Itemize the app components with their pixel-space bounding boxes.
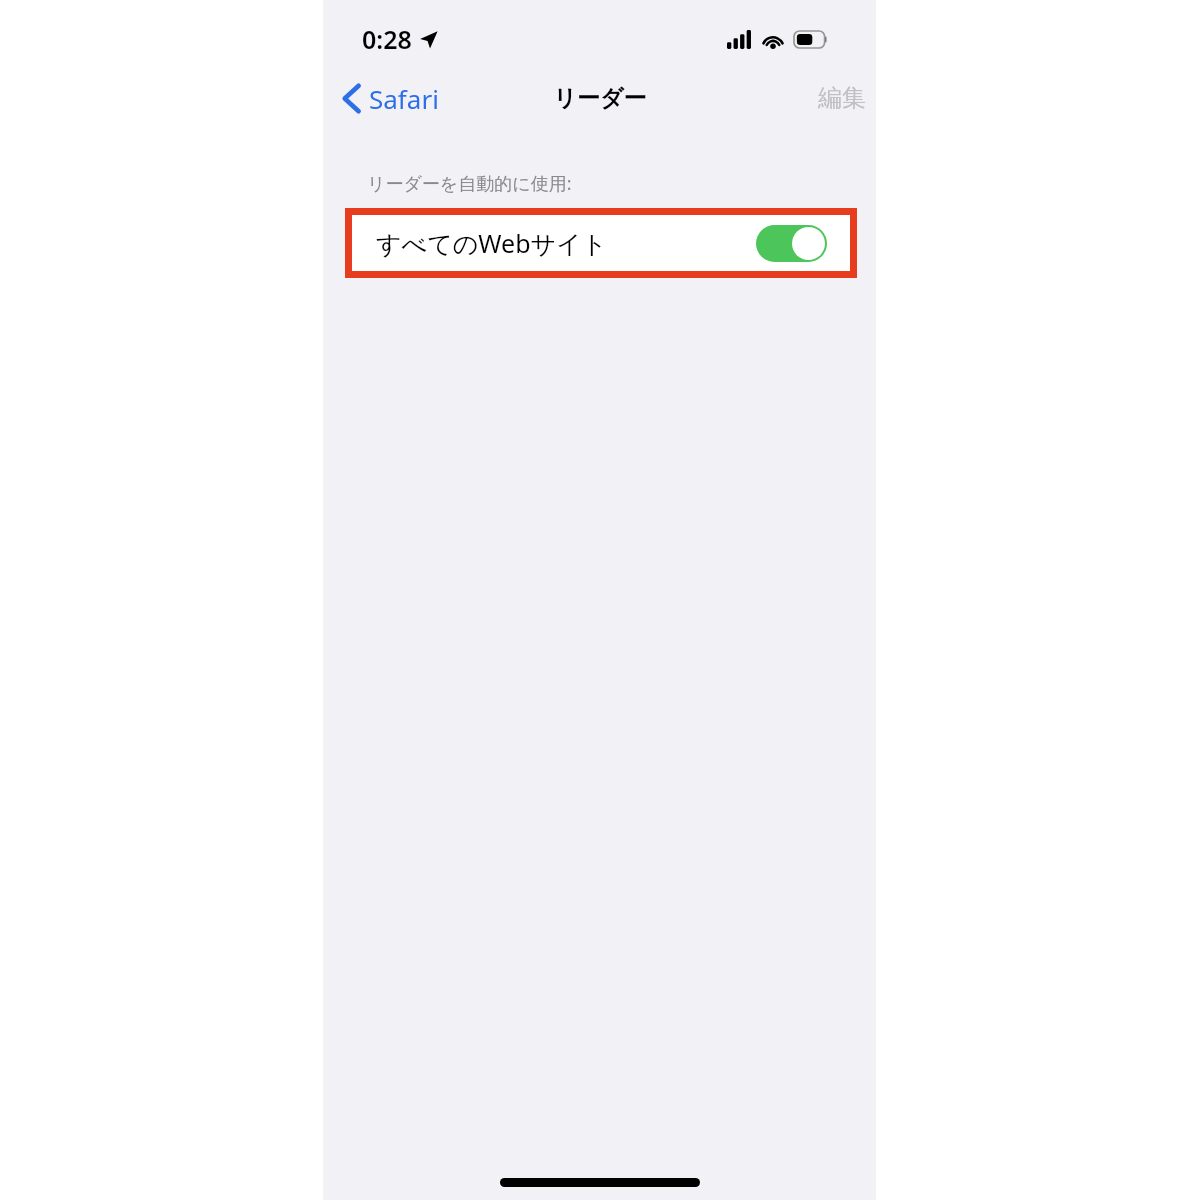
button[interactable]: すべてのWebサイト [352,215,850,271]
staticText: 編集 [818,83,866,113]
staticText: リーダーを自動的に使用: [367,171,572,196]
button[interactable]: Safari [337,76,445,120]
staticText: すべてのWebサイト [376,226,608,260]
button[interactable]: 編集 [810,76,874,120]
staticText: リーダー [553,84,647,113]
button[interactable]: すべてのWebサイト 切り替え [756,225,827,262]
staticText: Safari [369,81,439,116]
staticText: 0:28 [362,22,412,56]
